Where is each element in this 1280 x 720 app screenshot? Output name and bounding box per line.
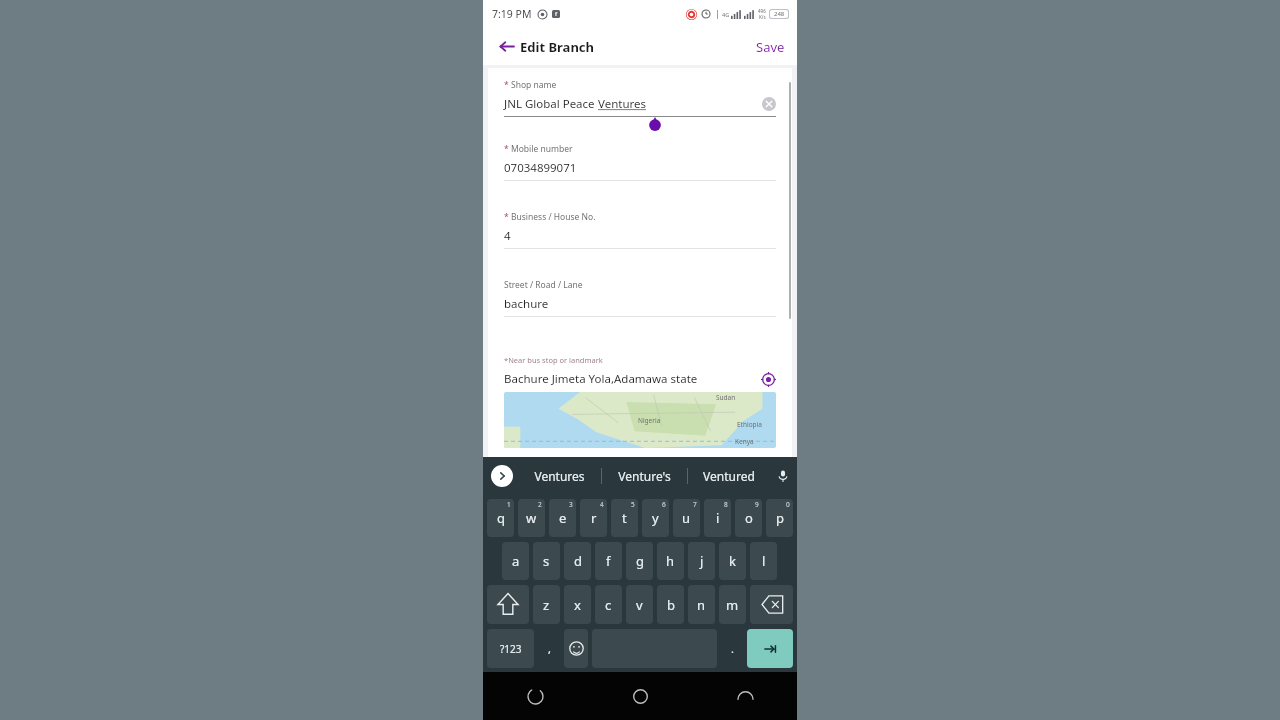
staticText: x [574,596,581,614]
staticText: Ventured [703,468,755,484]
button[interactable]: c [595,585,622,624]
button[interactable]: Back [495,35,518,58]
staticText: o [745,509,753,527]
button[interactable]: Recents [518,679,552,713]
staticText: Street / Road / Lane [504,279,583,291]
staticText: s [543,552,550,570]
staticText: 1 [507,500,511,509]
button[interactable]: k [719,542,746,580]
button[interactable]: j [688,542,715,580]
button[interactable]: Save [744,32,797,62]
button[interactable]: Ventured [688,457,769,495]
staticText: Nigeria [638,416,661,425]
button[interactable]: Back [728,679,762,713]
staticText: * [504,211,511,223]
staticText: e [559,509,567,527]
button[interactable]: i [704,499,731,537]
staticText: n [697,596,706,614]
staticText: w [526,509,537,527]
staticText: Business / House No. [511,211,596,223]
button[interactable]: b [657,585,684,624]
staticText: , [548,641,551,656]
staticText: 496 [758,8,766,14]
button[interactable]: r [580,499,607,537]
button[interactable]: w [518,499,545,537]
staticText: z [543,596,550,614]
staticText: 2 [538,500,542,509]
staticText: 9 [755,500,759,509]
button[interactable]: g [626,542,653,580]
staticText: q [497,509,505,527]
staticText: Mobile number [511,143,573,155]
staticText: JNL Global Peace [504,96,598,112]
button[interactable]: Clear [762,97,776,111]
staticText: d [574,552,582,570]
button[interactable]: Use my location [761,372,776,387]
staticText: r [591,509,597,527]
button[interactable]: ?123 [487,629,534,668]
staticText: 4G [722,11,730,18]
button[interactable]: z [533,585,560,624]
staticText: c [605,596,612,614]
button[interactable]: . [721,629,743,668]
button[interactable]: q [487,499,514,537]
button[interactable]: s [533,542,560,580]
staticText: u [682,509,691,527]
button[interactable] [564,629,588,668]
staticText: Ventures [534,468,585,484]
button[interactable]: l [750,542,777,580]
staticText: g [636,552,644,570]
staticText: K/s [759,14,766,20]
staticText: 8 [724,500,728,509]
staticText: l [762,552,766,570]
staticText: Ventures [598,96,647,112]
staticText: . [731,641,734,656]
button[interactable]: o [735,499,762,537]
staticText: Bachure Jimeta Yola,Adamawa state [504,371,761,387]
staticText: i [716,509,720,527]
button[interactable]: m [719,585,746,624]
staticText: Shop name [511,79,557,91]
staticText: 4 [600,500,604,509]
button[interactable]: a [502,542,529,580]
button[interactable]: f [595,542,622,580]
staticText: 4 [504,228,511,244]
staticText: v [636,596,643,614]
staticText: Venture's [618,468,671,484]
staticText: 5 [631,500,635,509]
button[interactable]: e [549,499,576,537]
button[interactable]: More suggestions [491,465,513,487]
staticText: Sudan [716,393,736,402]
staticText: p [776,509,784,527]
button[interactable]: d [564,542,591,580]
staticText: * [504,79,511,91]
button[interactable]: x [564,585,591,624]
button[interactable]: u [673,499,700,537]
button[interactable]: Map [504,392,776,448]
button[interactable]: t [611,499,638,537]
staticText: 07034899071 [504,160,577,176]
staticText: b [667,596,675,614]
button[interactable]: Venture's [602,457,687,495]
staticText: 7:19 PM [492,7,532,21]
staticText: a [512,552,520,570]
button[interactable]: Home [623,679,657,713]
button[interactable]: n [688,585,715,624]
button[interactable]: Shift [487,585,529,624]
button[interactable]: y [642,499,669,537]
staticText: m [726,596,739,614]
staticText: h [666,552,675,570]
button[interactable]: Enter [747,629,793,668]
button[interactable]: h [657,542,684,580]
button[interactable]: v [626,585,653,624]
button[interactable]: , [538,629,560,668]
button[interactable]: Voice input [769,457,797,495]
staticText: y [652,509,659,527]
staticText: bachure [504,296,549,312]
button[interactable]: Backspace [750,585,793,624]
staticText: f [555,10,558,18]
staticText: f [606,552,611,570]
button[interactable]: Ventures [517,457,601,495]
button[interactable]: p [766,499,793,537]
